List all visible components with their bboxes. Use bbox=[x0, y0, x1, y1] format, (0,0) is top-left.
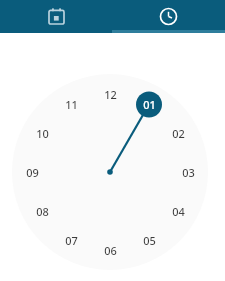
button[interactable]: 09 bbox=[18, 163, 46, 181]
button[interactable]: 10 bbox=[28, 124, 56, 142]
button[interactable]: Select time bbox=[112, 0, 225, 33]
staticText: 07 bbox=[65, 233, 78, 248]
staticText: 05 bbox=[143, 233, 156, 248]
button[interactable]: Select date bbox=[0, 0, 112, 33]
button[interactable]: 06 bbox=[96, 241, 124, 259]
staticText: 09 bbox=[26, 165, 39, 180]
staticText: 06 bbox=[104, 243, 117, 258]
staticText: 01 bbox=[143, 97, 156, 112]
button[interactable]: 04 bbox=[164, 202, 192, 220]
button[interactable]: 12 bbox=[96, 85, 124, 103]
button[interactable]: 08 bbox=[28, 202, 56, 220]
button[interactable]: 05 bbox=[135, 231, 163, 249]
staticText: 08 bbox=[36, 204, 49, 219]
staticText: 10 bbox=[36, 126, 49, 141]
staticText: 03 bbox=[182, 165, 195, 180]
staticText: 02 bbox=[172, 126, 185, 141]
staticText: 12 bbox=[104, 87, 117, 102]
staticText: 04 bbox=[172, 204, 185, 219]
button[interactable]: 11 bbox=[57, 95, 85, 113]
button[interactable]: 03 bbox=[174, 163, 202, 181]
button[interactable]: 07 bbox=[57, 231, 85, 249]
button[interactable]: 02 bbox=[164, 124, 192, 142]
staticText: 11 bbox=[65, 97, 78, 112]
button[interactable]: 01 bbox=[135, 95, 163, 113]
